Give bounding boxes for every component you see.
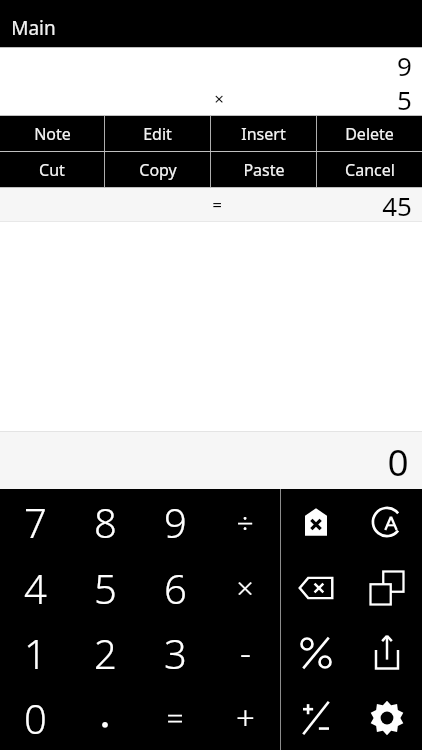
button[interactable]: Insert xyxy=(211,116,316,151)
staticText: 9 xyxy=(164,495,187,549)
button[interactable]: Delete xyxy=(317,116,422,151)
button[interactable]: Share xyxy=(351,620,422,685)
button[interactable]: × xyxy=(210,555,280,620)
staticText: + xyxy=(236,695,255,740)
staticText: 2 xyxy=(94,626,117,680)
staticText: 3 xyxy=(164,626,187,680)
button[interactable]: 5 xyxy=(70,555,140,620)
staticText: = xyxy=(212,193,222,216)
button[interactable]: Percent xyxy=(281,620,351,685)
button[interactable]: 3 xyxy=(140,620,210,685)
button[interactable]: Paste xyxy=(211,152,316,187)
button[interactable]: 8 xyxy=(70,489,140,555)
staticText: Note xyxy=(34,123,71,145)
staticText: Delete xyxy=(345,123,394,145)
button[interactable]: - xyxy=(210,620,280,685)
staticText: 8 xyxy=(94,495,117,549)
staticText: Main xyxy=(11,15,56,41)
button[interactable]: Main xyxy=(0,0,422,47)
staticText: = xyxy=(166,697,184,738)
staticText: ÷ xyxy=(236,502,254,543)
staticText: 7 xyxy=(24,495,47,549)
button[interactable]: Copy xyxy=(105,152,210,187)
staticText: - xyxy=(240,630,251,676)
staticText: Cancel xyxy=(345,159,395,181)
staticText: × xyxy=(214,87,224,110)
button[interactable]: 9 xyxy=(140,489,210,555)
staticText: Edit xyxy=(143,123,172,145)
staticText: 4 xyxy=(24,561,47,615)
button[interactable]: Cancel xyxy=(317,152,422,187)
button[interactable]: × xyxy=(0,82,422,115)
button[interactable]: + xyxy=(210,685,280,750)
staticText: × xyxy=(236,567,254,608)
button[interactable]: Edit xyxy=(105,116,210,151)
button[interactable]: ÷ xyxy=(210,489,280,555)
staticText: Paste xyxy=(243,159,285,181)
staticText: Copy xyxy=(139,159,177,181)
button[interactable]: Clear all xyxy=(351,489,422,555)
button[interactable]: Copy xyxy=(351,555,422,620)
staticText: 5 xyxy=(94,561,117,615)
button[interactable]: 1 xyxy=(0,620,70,685)
button[interactable]: 9 xyxy=(0,48,422,82)
button[interactable]: 0 xyxy=(0,685,70,750)
staticText: 1 xyxy=(24,626,47,680)
staticText: 9 xyxy=(397,48,412,82)
staticText: 5 xyxy=(397,82,412,115)
button[interactable]: 2 xyxy=(70,620,140,685)
button[interactable]: Note xyxy=(0,116,104,151)
staticText: Insert xyxy=(241,123,286,145)
button[interactable]: = xyxy=(140,685,210,750)
button[interactable]: Toggle sign xyxy=(281,685,351,750)
button[interactable]: Cut xyxy=(0,152,104,187)
staticText: 45 xyxy=(382,188,412,221)
staticText: 0 xyxy=(387,436,409,486)
staticText: 6 xyxy=(164,561,187,615)
button[interactable]: 6 xyxy=(140,555,210,620)
staticText: Cut xyxy=(39,159,65,181)
button[interactable]: 0 xyxy=(0,432,422,489)
button[interactable]: Settings xyxy=(351,685,422,750)
button[interactable] xyxy=(70,685,140,750)
button[interactable]: 7 xyxy=(0,489,70,555)
staticText: 0 xyxy=(24,691,47,745)
button[interactable]: Backspace xyxy=(281,555,351,620)
button[interactable]: = xyxy=(0,188,422,221)
button[interactable]: 4 xyxy=(0,555,70,620)
button[interactable]: Clear entry xyxy=(281,489,351,555)
